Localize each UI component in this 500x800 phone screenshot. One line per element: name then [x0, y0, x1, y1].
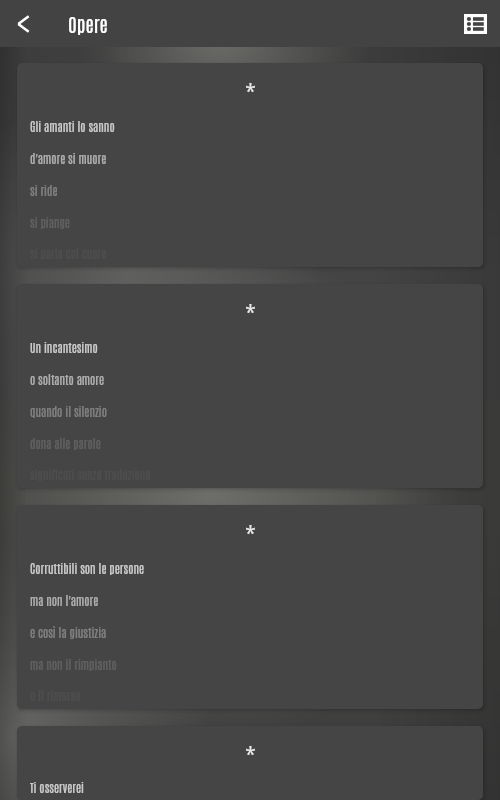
staticText: Opere	[68, 11, 108, 36]
button[interactable]: *	[17, 505, 483, 709]
staticText: e così la giustizia	[30, 624, 107, 639]
staticText: o soltanto amore	[30, 371, 105, 386]
staticText: *	[245, 299, 256, 325]
staticText: ma non il rimpianto	[30, 656, 117, 671]
staticText: Ti osserverei	[30, 779, 84, 794]
button[interactable]: *	[17, 63, 483, 267]
staticText: d'amore si muore	[30, 150, 107, 165]
button[interactable]: List view	[450, 0, 500, 47]
button[interactable]: Back	[0, 0, 47, 47]
staticText: *	[245, 520, 256, 546]
button[interactable]: *	[17, 284, 483, 488]
staticText: quando il silenzio	[30, 403, 108, 418]
button[interactable]: *	[17, 726, 483, 800]
staticText: *	[245, 78, 256, 104]
staticText: si ride	[30, 182, 58, 197]
staticText: si piange	[30, 214, 70, 229]
staticText: o il rimorso	[30, 687, 81, 702]
staticText: si parla col cuore	[30, 245, 107, 260]
staticText: ma non l'amore	[30, 592, 99, 607]
staticText: Un incantesimo	[30, 339, 98, 354]
staticText: Corruttibili son le persone	[30, 560, 145, 575]
staticText: significati senza traduzione	[30, 466, 151, 481]
staticText: *	[245, 741, 256, 767]
staticText: Gli amanti lo sanno	[30, 118, 115, 133]
staticText: dona alle parole	[30, 435, 101, 450]
